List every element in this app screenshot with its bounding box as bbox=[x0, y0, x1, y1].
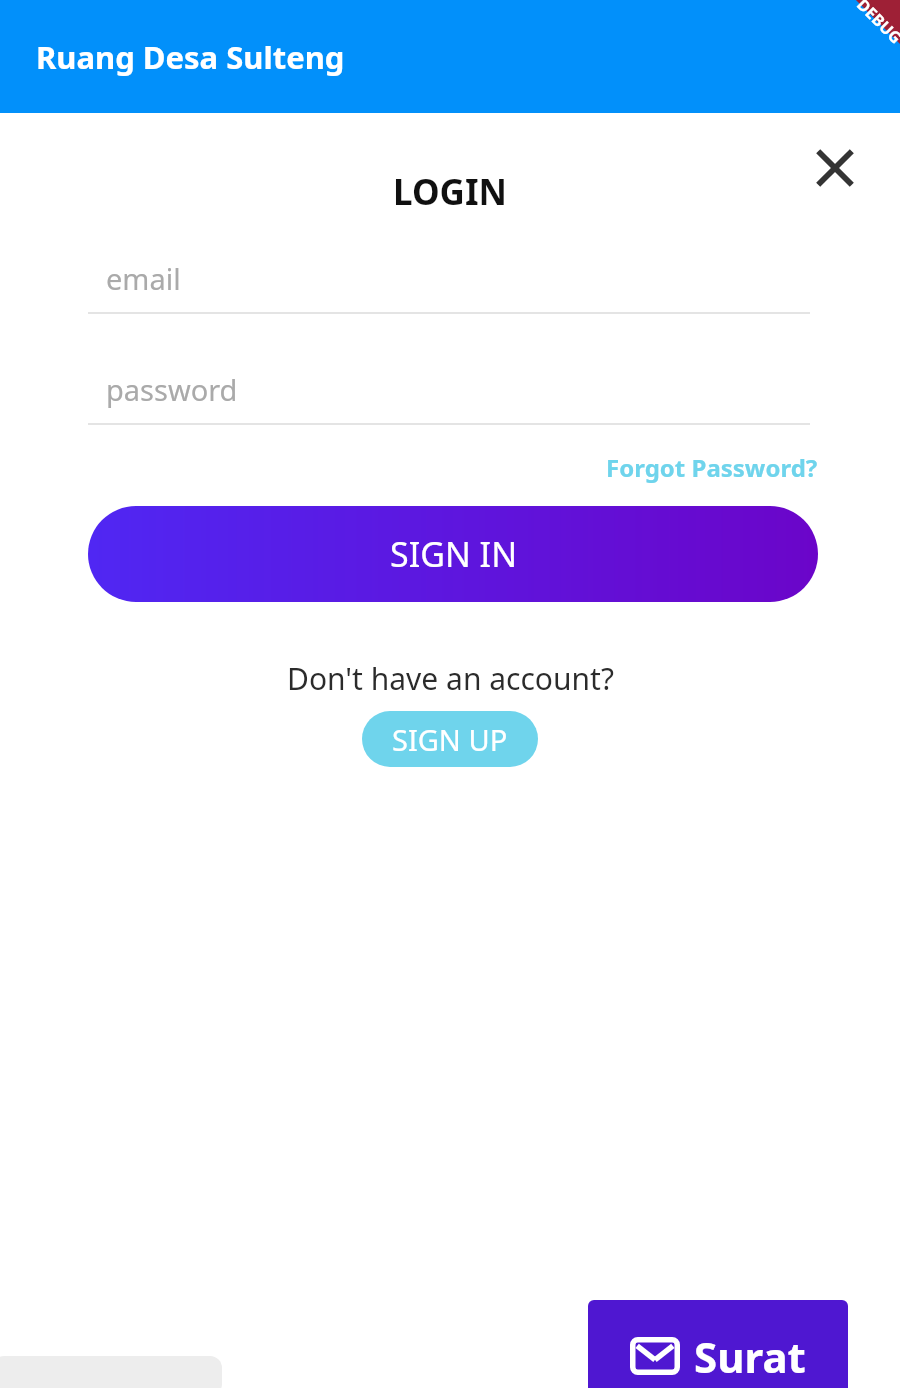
button[interactable]: email bbox=[88, 259, 810, 314]
staticText: Don't have an account? bbox=[287, 658, 614, 699]
staticText: Ruang Desa Sulteng bbox=[36, 36, 345, 78]
button[interactable]: Surat bbox=[588, 1300, 848, 1388]
staticText: email bbox=[106, 259, 181, 298]
staticText: password bbox=[106, 370, 238, 409]
staticText: Surat bbox=[694, 1328, 806, 1385]
staticText: SIGN IN bbox=[390, 531, 517, 577]
button[interactable]: SIGN IN bbox=[88, 506, 818, 602]
button[interactable]: Close bbox=[808, 141, 862, 195]
staticText: SIGN UP bbox=[392, 720, 508, 759]
button[interactable]: password bbox=[88, 370, 810, 425]
button[interactable]: Forgot Password? bbox=[606, 451, 818, 484]
button[interactable]: SIGN UP bbox=[362, 711, 538, 767]
staticText: DEBUG bbox=[852, 0, 900, 48]
staticText: LOGIN bbox=[393, 168, 507, 216]
